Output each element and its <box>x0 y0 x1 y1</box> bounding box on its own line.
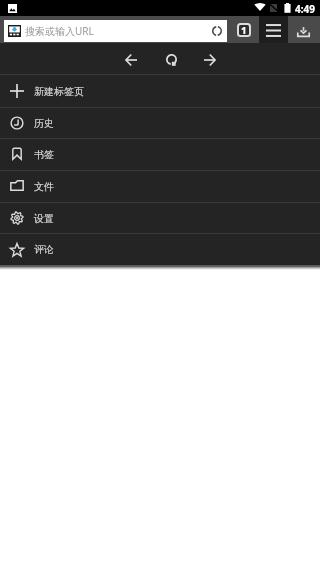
button[interactable]: Tabs <box>229 16 259 43</box>
button[interactable]: 设置 <box>0 202 320 234</box>
button[interactable]: Menu <box>259 16 288 43</box>
staticText: 新建标签页 <box>34 85 84 98</box>
button[interactable]: Reload page <box>207 20 227 42</box>
button[interactable]: 书签 <box>0 138 320 170</box>
button[interactable]: 评论 <box>0 233 320 265</box>
button[interactable]: Downloads <box>288 16 320 43</box>
staticText: 搜索或输入URL <box>25 24 94 38</box>
staticText: 设置 <box>34 212 54 225</box>
staticText: 历史 <box>34 117 54 130</box>
button[interactable]: 搜索或输入URL <box>4 20 227 42</box>
staticText: 文件 <box>34 180 54 193</box>
button[interactable]: Back <box>111 43 151 75</box>
button[interactable]: Forward <box>190 43 230 75</box>
staticText: 4:49 <box>295 2 315 16</box>
button[interactable]: Refresh <box>151 43 191 75</box>
staticText: 1 <box>241 25 247 34</box>
button[interactable]: 文件 <box>0 170 320 202</box>
staticText: 评论 <box>34 243 54 256</box>
staticText: 书签 <box>34 148 54 161</box>
button[interactable]: 历史 <box>0 107 320 139</box>
button[interactable]: 新建标签页 <box>0 75 320 107</box>
